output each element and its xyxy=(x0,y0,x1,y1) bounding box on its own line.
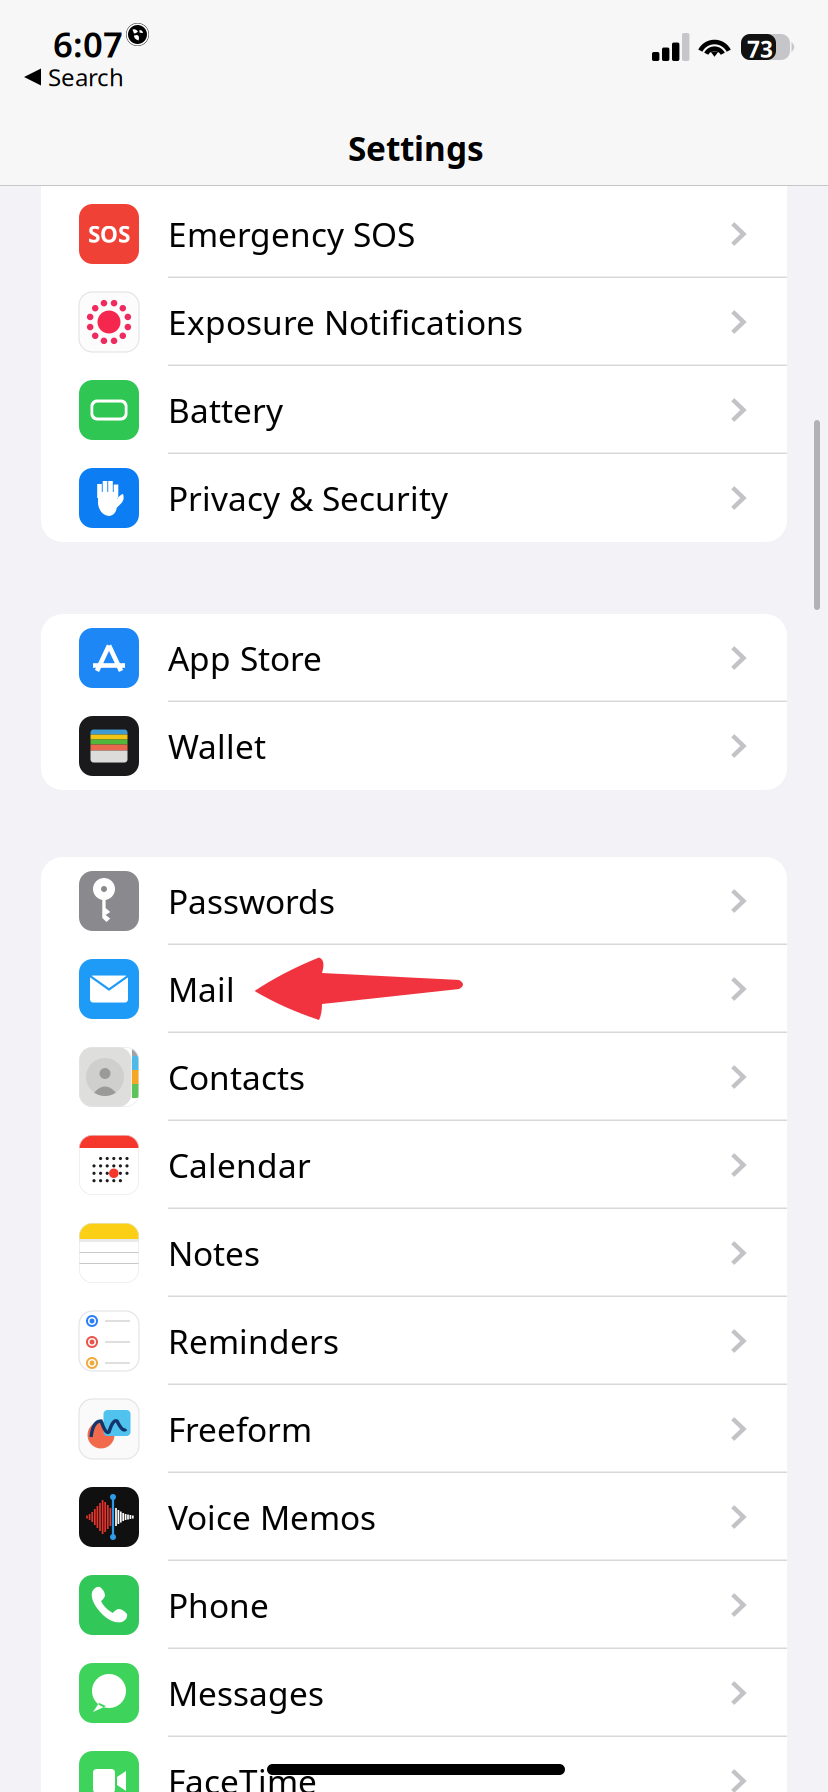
staticText: FaceTime xyxy=(168,1759,317,1792)
staticText: Messages xyxy=(168,1671,324,1715)
staticText: Reminders xyxy=(168,1319,339,1363)
button[interactable]: Contacts xyxy=(41,1033,787,1121)
button[interactable]: Mail xyxy=(41,945,787,1033)
staticText: Contacts xyxy=(168,1055,305,1099)
staticText: Voice Memos xyxy=(168,1495,376,1539)
staticText: Passwords xyxy=(168,879,335,923)
button[interactable]: Battery xyxy=(41,366,787,454)
staticText: Search xyxy=(48,61,124,93)
staticText: Exposure Notifications xyxy=(168,300,523,344)
button[interactable]: App Store xyxy=(41,614,787,702)
staticText: Freeform xyxy=(168,1407,312,1451)
button[interactable]: Notes xyxy=(41,1209,787,1297)
button[interactable]: FaceTime xyxy=(41,1737,787,1792)
staticText: 6:07 xyxy=(53,21,123,67)
staticText: Notes xyxy=(168,1231,260,1275)
button[interactable]: Phone xyxy=(41,1561,787,1649)
staticText: App Store xyxy=(168,636,322,680)
staticText: Settings xyxy=(348,126,484,170)
button[interactable]: Passwords xyxy=(41,857,787,945)
button[interactable]: Messages xyxy=(41,1649,787,1737)
button[interactable]: Calendar xyxy=(41,1121,787,1209)
button[interactable]: Wallet xyxy=(41,702,787,790)
button[interactable]: Privacy & Security xyxy=(41,454,787,542)
button[interactable]: Exposure Notifications xyxy=(41,278,787,366)
button[interactable]: Freeform xyxy=(41,1385,787,1473)
button[interactable]: Voice Memos xyxy=(41,1473,787,1561)
button[interactable]: SOS xyxy=(41,190,787,278)
staticText: Privacy & Security xyxy=(168,476,448,520)
staticText: Mail xyxy=(168,967,235,1011)
staticText: Battery xyxy=(168,388,283,432)
staticText: Wallet xyxy=(168,724,266,768)
staticText: Emergency SOS xyxy=(168,212,415,256)
staticText: 73 xyxy=(747,34,773,64)
staticText: Calendar xyxy=(168,1143,311,1187)
button[interactable]: Search xyxy=(24,65,124,89)
staticText: Phone xyxy=(168,1583,269,1627)
button[interactable]: Reminders xyxy=(41,1297,787,1385)
staticText: SOS xyxy=(88,219,130,249)
